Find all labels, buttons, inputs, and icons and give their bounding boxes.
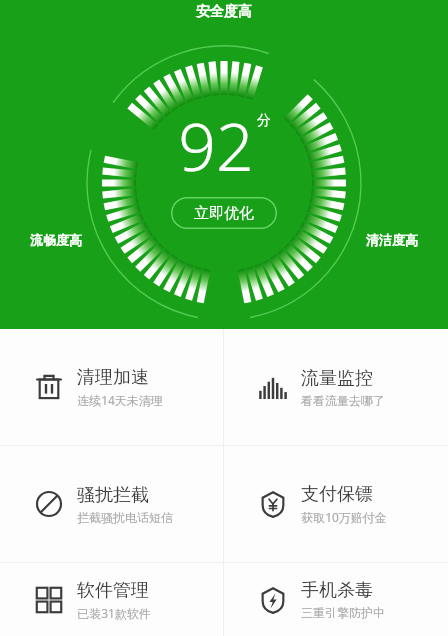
button[interactable]: 软件管理	[0, 563, 223, 636]
staticText: 获取10万赔付金	[301, 509, 387, 525]
button[interactable]: 清理加速	[0, 329, 223, 445]
button[interactable]: 骚扰拦截	[0, 446, 223, 562]
staticText: 骚扰拦截	[77, 484, 149, 507]
staticText: 流畅度高	[30, 232, 82, 248]
button[interactable]: 流量监控	[224, 329, 448, 445]
staticText: 分	[257, 112, 271, 130]
staticText: 92	[178, 100, 254, 190]
button[interactable]: 立即优化	[171, 197, 277, 229]
button[interactable]: 支付保镖	[224, 446, 448, 562]
staticText: 已装31款软件	[77, 605, 151, 621]
staticText: 三重引擎防护中	[301, 605, 385, 620]
staticText: 清洁度高	[366, 232, 418, 248]
staticText: 软件管理	[77, 579, 149, 602]
staticText: 看看流量去哪了	[301, 393, 385, 408]
staticText: 连续14天未清理	[77, 392, 163, 408]
staticText: 手机杀毒	[301, 579, 373, 602]
staticText: 安全度高	[196, 3, 252, 21]
staticText: 清理加速	[77, 366, 149, 389]
staticText: 流量监控	[301, 367, 373, 390]
button[interactable]: 手机杀毒	[224, 563, 448, 636]
staticText: 立即优化	[194, 204, 254, 223]
staticText: 拦截骚扰电话短信	[77, 510, 173, 525]
staticText: 支付保镖	[301, 483, 373, 506]
